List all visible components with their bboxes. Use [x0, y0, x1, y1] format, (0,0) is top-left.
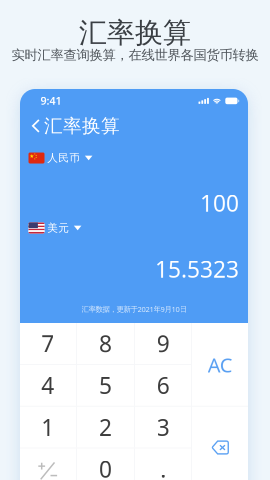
- button[interactable]: 7: [19, 323, 76, 364]
- button[interactable]: 汇率换算: [31, 117, 120, 135]
- staticText: 6: [157, 370, 170, 400]
- button[interactable]: AC: [192, 324, 249, 406]
- staticText: 100: [200, 188, 239, 218]
- staticText: 5: [99, 370, 112, 400]
- staticText: 实时汇率查询换算，在线世界各国货币转换: [11, 47, 258, 63]
- staticText: 7: [41, 328, 54, 358]
- button[interactable]: Toggle sign: [19, 448, 76, 480]
- button[interactable]: Delete: [192, 407, 249, 480]
- staticText: 人民币: [47, 151, 80, 164]
- button[interactable]: .: [135, 448, 192, 480]
- button[interactable]: 8: [77, 323, 134, 364]
- button[interactable]: 4: [19, 365, 76, 406]
- button[interactable]: 9: [135, 323, 192, 364]
- button[interactable]: 3: [135, 407, 192, 448]
- staticText: 0: [99, 454, 112, 480]
- staticText: 3: [157, 412, 170, 442]
- staticText: 9: [157, 328, 170, 358]
- button[interactable]: 美元: [28, 221, 216, 235]
- staticText: 汇率数据，更新于2021年9月10日: [81, 304, 186, 314]
- staticText: .: [160, 454, 166, 480]
- staticText: 9:41: [40, 94, 61, 108]
- staticText: 汇率换算: [79, 16, 191, 50]
- button[interactable]: 6: [135, 365, 192, 406]
- staticText: 15.5323: [155, 254, 239, 284]
- button[interactable]: 1: [19, 407, 76, 448]
- staticText: 4: [41, 370, 54, 400]
- button[interactable]: 0: [77, 448, 134, 480]
- staticText: 1: [41, 412, 54, 442]
- staticText: 汇率换算: [44, 114, 120, 137]
- staticText: 2: [99, 412, 112, 442]
- button[interactable]: 人民币: [28, 151, 216, 165]
- button[interactable]: 2: [77, 407, 134, 448]
- staticText: 8: [99, 328, 112, 358]
- button[interactable]: 5: [77, 365, 134, 406]
- staticText: 美元: [47, 221, 69, 234]
- staticText: AC: [208, 351, 233, 378]
